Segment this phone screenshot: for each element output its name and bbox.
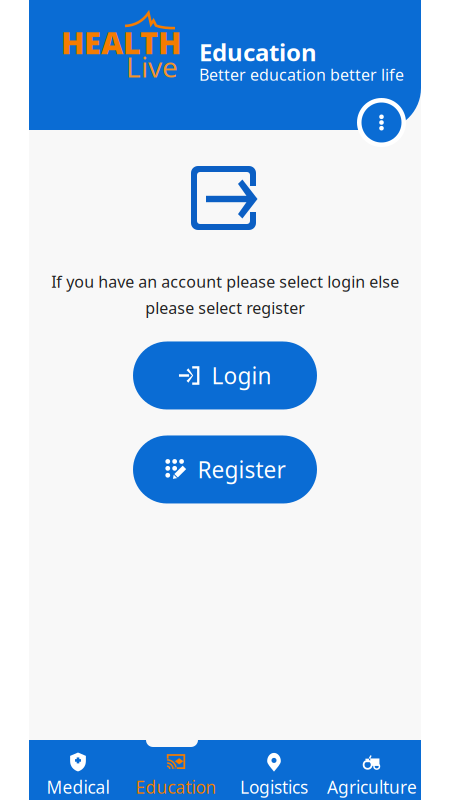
staticText: HEALTH [61,22,181,63]
staticText: Login [211,360,271,390]
button[interactable]: More options [357,98,406,147]
staticText: Agriculture [327,775,417,798]
staticText: Logistics [240,775,308,798]
staticText: Better education better life [199,64,404,85]
button[interactable]: Register [133,435,317,503]
staticText: Education [199,36,317,68]
staticText: Medical [46,775,109,798]
button[interactable]: Medical [29,751,127,799]
staticText: If you have an account please select log… [51,271,399,292]
button[interactable]: Logistics [225,751,323,799]
staticText: Live [126,48,178,85]
staticText: Education [135,775,216,798]
button[interactable]: Login [133,341,317,409]
button[interactable]: Agriculture [323,751,421,799]
button[interactable]: Education [127,751,225,799]
staticText: please select register [145,297,305,318]
staticText: Register [197,454,285,484]
